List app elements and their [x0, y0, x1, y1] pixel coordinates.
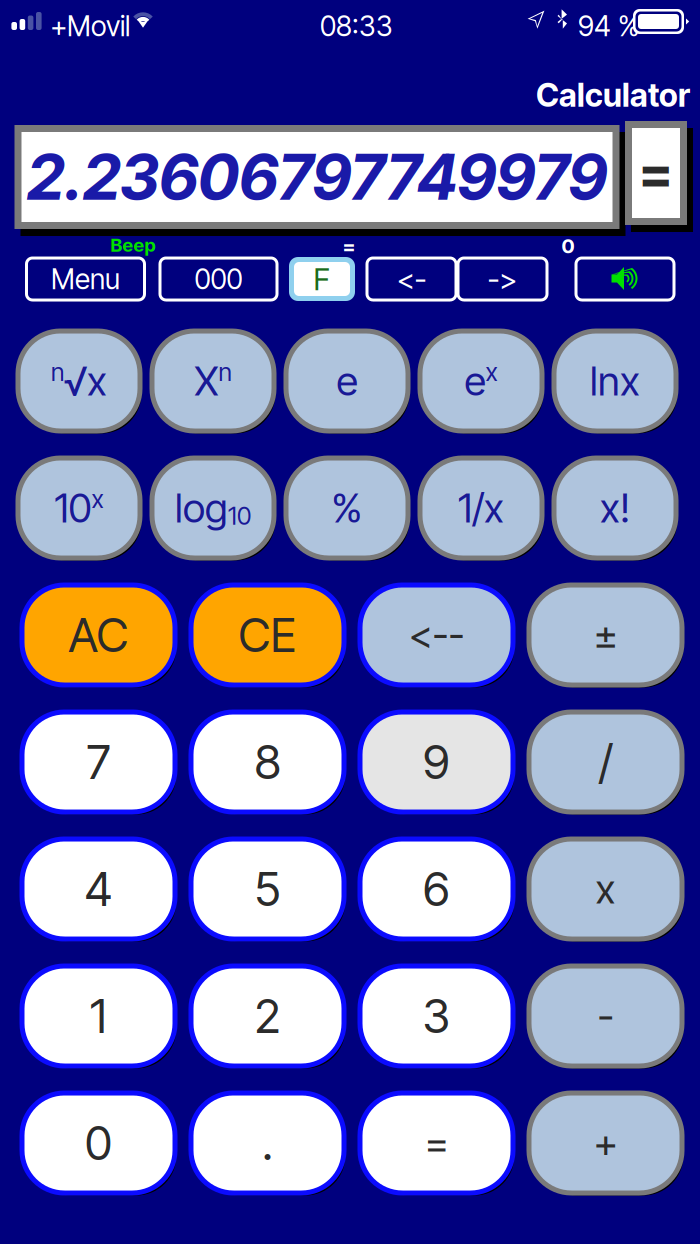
- button[interactable]: Menu: [26, 258, 144, 300]
- staticText: 10: [228, 501, 251, 531]
- staticText: Menu: [51, 262, 120, 296]
- button[interactable]: 10: [15, 455, 146, 565]
- button[interactable]: =: [625, 121, 699, 233]
- button[interactable]: +: [526, 1090, 688, 1200]
- button[interactable]: F: [289, 257, 355, 301]
- staticText: x!: [600, 484, 630, 532]
- staticText: e: [464, 357, 485, 405]
- staticText: X: [194, 357, 218, 405]
- button[interactable]: %: [283, 455, 414, 565]
- button[interactable]: n: [15, 328, 146, 438]
- button[interactable]: x!: [551, 455, 682, 565]
- staticText: n: [51, 357, 64, 387]
- button[interactable]: =: [357, 1090, 519, 1200]
- staticText: x: [91, 484, 103, 514]
- button[interactable]: <‌-: [367, 258, 456, 300]
- staticText: x: [485, 357, 497, 387]
- button[interactable]: .: [188, 1090, 350, 1200]
- staticText: e: [336, 357, 357, 405]
- staticText: 5: [254, 861, 280, 917]
- staticText: 2.23606797749979: [27, 139, 607, 215]
- staticText: lnx: [590, 357, 640, 405]
- button[interactable]: 9: [357, 709, 519, 819]
- staticText: =: [342, 234, 355, 258]
- staticText: ±: [593, 611, 617, 659]
- staticText: 1/x: [458, 484, 504, 532]
- staticText: -‌>: [487, 261, 517, 297]
- button[interactable]: log: [149, 455, 280, 565]
- button[interactable]: 8: [188, 709, 350, 819]
- staticText: 1: [90, 988, 107, 1044]
- button[interactable]: CE: [188, 582, 350, 692]
- button[interactable]: 000: [160, 258, 277, 300]
- staticText: %: [331, 484, 362, 532]
- staticText: 0: [561, 234, 574, 258]
- staticText: CE: [238, 607, 296, 663]
- button[interactable]: x: [526, 836, 688, 946]
- button[interactable]: e: [417, 328, 548, 438]
- staticText: 3: [422, 988, 450, 1044]
- button[interactable]: 6: [357, 836, 519, 946]
- staticText: 000: [194, 262, 242, 296]
- staticText: F: [313, 260, 330, 297]
- button[interactable]: e: [283, 328, 414, 438]
- staticText: x: [595, 865, 615, 913]
- staticText: 94 %: [578, 9, 639, 43]
- staticText: Beep: [110, 234, 155, 256]
- button[interactable]: -: [526, 963, 688, 1073]
- staticText: 4: [84, 861, 112, 917]
- staticText: +: [593, 1119, 617, 1167]
- button[interactable]: 2: [188, 963, 350, 1073]
- button[interactable]: <‌-‌-: [357, 582, 519, 692]
- button[interactable]: X: [149, 328, 280, 438]
- staticText: 0: [85, 1115, 112, 1171]
- button[interactable]: lnx: [551, 328, 682, 438]
- staticText: +Movil: [50, 9, 130, 43]
- staticText: Calculator: [536, 76, 690, 114]
- button[interactable]: 0: [19, 1090, 181, 1200]
- staticText: 08:33: [320, 9, 393, 43]
- staticText: -: [597, 992, 613, 1040]
- staticText: 8: [254, 734, 280, 790]
- staticText: log: [175, 484, 228, 532]
- staticText: 6: [423, 861, 450, 917]
- staticText: .: [262, 1115, 273, 1171]
- staticText: 10: [54, 484, 91, 532]
- staticText: =: [638, 141, 673, 205]
- button[interactable]: 4: [19, 836, 181, 946]
- staticText: n: [218, 357, 231, 387]
- button[interactable]: 7: [19, 709, 181, 819]
- button[interactable]: 1: [19, 963, 181, 1073]
- button[interactable]: AC: [19, 582, 181, 692]
- staticText: =: [424, 1119, 448, 1167]
- button[interactable]: Sound: [576, 258, 674, 300]
- button[interactable]: 3: [357, 963, 519, 1073]
- staticText: <‌-‌-: [408, 612, 464, 658]
- button[interactable]: -‌>: [458, 258, 547, 300]
- button[interactable]: /: [526, 709, 688, 819]
- staticText: 7: [86, 734, 110, 790]
- staticText: √x: [64, 357, 107, 405]
- staticText: /: [598, 734, 612, 790]
- button[interactable]: ±: [526, 582, 688, 692]
- button[interactable]: 1/x: [417, 455, 548, 565]
- staticText: 2: [254, 988, 280, 1044]
- staticText: AC: [68, 607, 128, 663]
- button[interactable]: 5: [188, 836, 350, 946]
- staticText: 9: [423, 734, 450, 790]
- staticText: <‌-: [396, 261, 426, 297]
